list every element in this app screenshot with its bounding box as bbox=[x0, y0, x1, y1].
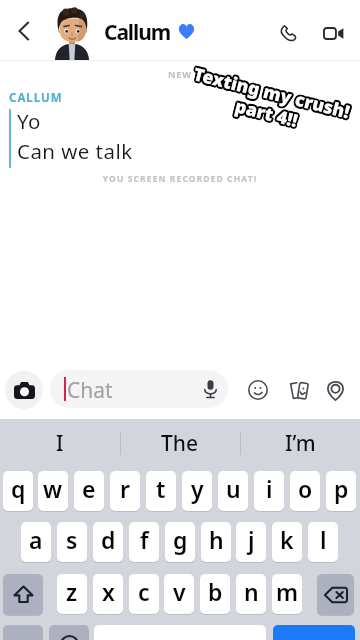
staticText: m bbox=[276, 576, 299, 607]
staticText: part 4!! bbox=[231, 93, 299, 132]
staticText: f bbox=[140, 524, 149, 555]
staticText: s bbox=[66, 524, 78, 555]
button[interactable]: d bbox=[93, 522, 123, 562]
staticText: o bbox=[298, 473, 313, 504]
button[interactable]: Backspace bbox=[317, 574, 354, 615]
staticText: g bbox=[173, 524, 188, 555]
staticText: part 4!! bbox=[234, 95, 301, 133]
staticText: c bbox=[138, 576, 150, 607]
staticText: Yo bbox=[17, 107, 41, 135]
staticText: part 4!! bbox=[231, 92, 299, 131]
staticText: part 4!! bbox=[235, 94, 303, 133]
button[interactable]: Location bbox=[321, 376, 349, 404]
staticText: n bbox=[244, 576, 259, 607]
staticText: Callum bbox=[104, 18, 171, 47]
button[interactable]: p bbox=[326, 471, 356, 511]
staticText: Texting my crush! bbox=[193, 60, 354, 122]
staticText: part 4!! bbox=[234, 93, 302, 131]
button[interactable]: Cards bbox=[286, 376, 314, 404]
staticText: Texting my crush! bbox=[190, 62, 351, 124]
staticText: Texting my crush! bbox=[192, 63, 353, 125]
button[interactable]: Video call bbox=[311, 11, 355, 55]
button[interactable]: a bbox=[21, 522, 51, 562]
button[interactable]: Stickers bbox=[244, 376, 272, 404]
button[interactable]: Emoji bbox=[49, 625, 89, 640]
button[interactable]: g bbox=[165, 522, 195, 562]
staticText: e bbox=[82, 473, 96, 504]
button[interactable]: r bbox=[110, 471, 140, 511]
staticText: d bbox=[101, 524, 116, 555]
staticText: q bbox=[11, 473, 26, 504]
button[interactable]: z bbox=[57, 574, 87, 614]
button[interactable]: o bbox=[290, 471, 320, 511]
staticText: b bbox=[208, 576, 223, 607]
staticText: y bbox=[191, 473, 204, 504]
button[interactable]: j bbox=[236, 522, 266, 562]
staticText: k bbox=[280, 524, 294, 555]
staticText: part 4!! bbox=[233, 93, 301, 132]
button[interactable]: q bbox=[3, 471, 33, 511]
staticText: part 4!! bbox=[235, 95, 302, 134]
staticText: w bbox=[43, 473, 63, 504]
button[interactable]: Return bbox=[273, 625, 355, 640]
button[interactable]: k bbox=[272, 522, 302, 562]
button[interactable]: s bbox=[57, 522, 87, 562]
staticText: Texting my crush! bbox=[192, 63, 353, 125]
staticText: l bbox=[320, 524, 327, 555]
button[interactable]: h bbox=[201, 522, 231, 562]
staticText: Texting my crush! bbox=[190, 60, 351, 122]
staticText: t bbox=[156, 473, 166, 504]
button[interactable]: Back bbox=[6, 13, 42, 49]
staticText: part 4!! bbox=[232, 94, 300, 133]
staticText: part 4!! bbox=[232, 92, 300, 131]
button[interactable]: Call bbox=[266, 11, 310, 55]
staticText: i bbox=[266, 473, 273, 504]
button[interactable]: n bbox=[236, 574, 266, 614]
staticText: z bbox=[66, 576, 78, 607]
staticText: Texting my crush! bbox=[194, 61, 355, 123]
staticText: Texting my crush! bbox=[191, 63, 352, 125]
button[interactable]: The bbox=[120, 419, 240, 467]
staticText: u bbox=[226, 473, 241, 504]
button[interactable]: i bbox=[254, 471, 284, 511]
button[interactable]: t bbox=[146, 471, 176, 511]
button[interactable]: e bbox=[74, 471, 104, 511]
staticText: part 4!! bbox=[232, 91, 300, 130]
staticText: Texting my crush! bbox=[193, 62, 354, 124]
button[interactable]: c bbox=[129, 574, 159, 614]
button[interactable]: u bbox=[218, 471, 248, 511]
button[interactable]: v bbox=[164, 574, 194, 614]
button[interactable]: Camera bbox=[5, 371, 43, 409]
staticText: Texting my crush! bbox=[190, 63, 351, 125]
button[interactable]: b bbox=[200, 574, 230, 614]
staticText: Texting my crush! bbox=[191, 59, 352, 121]
button[interactable]: Voice message bbox=[200, 379, 220, 399]
button[interactable]: x bbox=[93, 574, 123, 614]
staticText: Texting my crush! bbox=[191, 61, 352, 123]
staticText: v bbox=[173, 576, 186, 607]
staticText: Texting my crush! bbox=[193, 63, 354, 125]
button[interactable]: I’m bbox=[240, 419, 360, 467]
staticText: part 4!! bbox=[232, 95, 300, 134]
staticText: The bbox=[161, 429, 199, 458]
staticText: Chat bbox=[67, 376, 113, 405]
button[interactable]: l bbox=[308, 522, 338, 562]
button[interactable]: Shift bbox=[3, 574, 43, 615]
button[interactable]: I bbox=[0, 419, 120, 467]
button[interactable]: w bbox=[38, 471, 68, 511]
staticText: a bbox=[29, 524, 43, 555]
staticText: x bbox=[102, 576, 115, 607]
button[interactable]: m bbox=[272, 574, 302, 614]
staticText: part 4!! bbox=[231, 94, 299, 133]
staticText: I’m bbox=[285, 429, 316, 458]
staticText: j bbox=[248, 524, 255, 555]
button[interactable]: f bbox=[129, 522, 159, 562]
button[interactable]: Chat bbox=[50, 370, 228, 408]
staticText: part 4!! bbox=[233, 91, 301, 130]
staticText: I bbox=[56, 429, 64, 458]
staticText: r bbox=[120, 473, 130, 504]
staticText: part 4!! bbox=[233, 95, 301, 134]
button[interactable]: Numbers and symbols bbox=[3, 625, 43, 640]
button[interactable]: y bbox=[182, 471, 212, 511]
